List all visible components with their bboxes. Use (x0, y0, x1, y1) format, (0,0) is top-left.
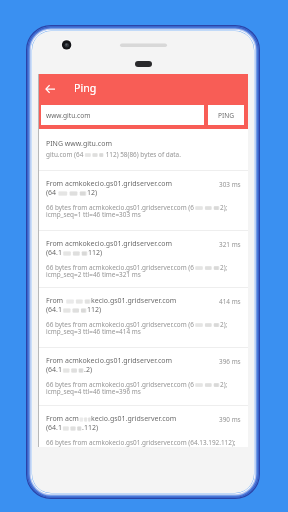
staticText: (64.1 (46, 248, 62, 258)
staticText: PING (218, 111, 235, 120)
staticText: PING www.gitu.com (46, 139, 112, 149)
staticText: 66 bytes from acmkokecio.gs01.gridserver… (46, 203, 194, 212)
staticText: 66 bytes from acmkokecio.gs01.gridserver… (46, 380, 194, 389)
button[interactable]: From acmkokecio.gs01.gridserver.com (38, 347, 248, 405)
button[interactable]: From (38, 287, 248, 345)
staticText: kecio.gs01.gridserver.com (91, 296, 177, 306)
button[interactable]: Back (40, 75, 60, 103)
staticText: icmp_seq=3 ttl=46 time=414 ms (46, 327, 141, 336)
staticText: 414 ms (219, 297, 241, 306)
staticText: (64.1 (46, 423, 62, 433)
staticText: 390 ms (219, 415, 241, 424)
staticText: From acmkokecio.gs01.gridserver.com (46, 239, 173, 249)
staticText: (64.1 (46, 365, 62, 375)
staticText: 66 bytes from acmkokecio.gs01.gridserver… (46, 438, 236, 447)
staticText: From acmkokecio.gs01.gridserver.com (46, 179, 173, 189)
staticText: From (46, 296, 65, 306)
staticText: From acmkokecio.gs01.gridserver.com (46, 356, 173, 366)
button[interactable]: From acmkokecio.gs01.gridserver.com (38, 230, 248, 288)
staticText: .112) (82, 423, 98, 433)
staticText: 321 ms (219, 240, 241, 249)
staticText: gitu.com (64 (46, 150, 84, 159)
staticText: .2) (84, 365, 92, 375)
staticText: 112) (88, 248, 103, 258)
button[interactable]: PING (208, 105, 244, 125)
staticText: kecio.gs01.gridserver.com (91, 414, 177, 424)
staticText: From acm (46, 414, 79, 424)
staticText: 112) (87, 305, 102, 315)
staticText: 66 bytes from acmkokecio.gs01.gridserver… (46, 263, 194, 272)
staticText: (64 (46, 188, 57, 198)
staticText: icmp_seq=4 ttl=46 time=396 ms (46, 387, 141, 396)
staticText: 2); (220, 203, 228, 212)
staticText: 2); (220, 263, 228, 272)
button[interactable]: From acmkokecio.gs01.gridserver.com (38, 170, 248, 228)
button[interactable]: From acm (38, 405, 248, 447)
staticText: icmp_seq=5 ttl=46 time=390 ms (46, 445, 141, 447)
staticText: www.gitu.com (46, 111, 91, 120)
button[interactable]: www.gitu.com (41, 105, 204, 125)
staticText: 112) 58(86) bytes of data. (104, 150, 181, 159)
staticText: icmp_seq=2 ttl=46 time=321 ms (46, 270, 141, 279)
staticText: 2); (220, 320, 228, 329)
staticText: Ping (74, 81, 97, 95)
staticText: (64.1 (46, 305, 62, 315)
staticText: 66 bytes from acmkokecio.gs01.gridserver… (46, 320, 194, 329)
staticText: icmp_seq=1 ttl=46 time=303 ms (46, 210, 141, 219)
staticText: 303 ms (219, 180, 241, 189)
staticText: 12) (87, 188, 98, 198)
staticText: 396 ms (219, 357, 241, 366)
staticText: 2); (220, 380, 228, 389)
